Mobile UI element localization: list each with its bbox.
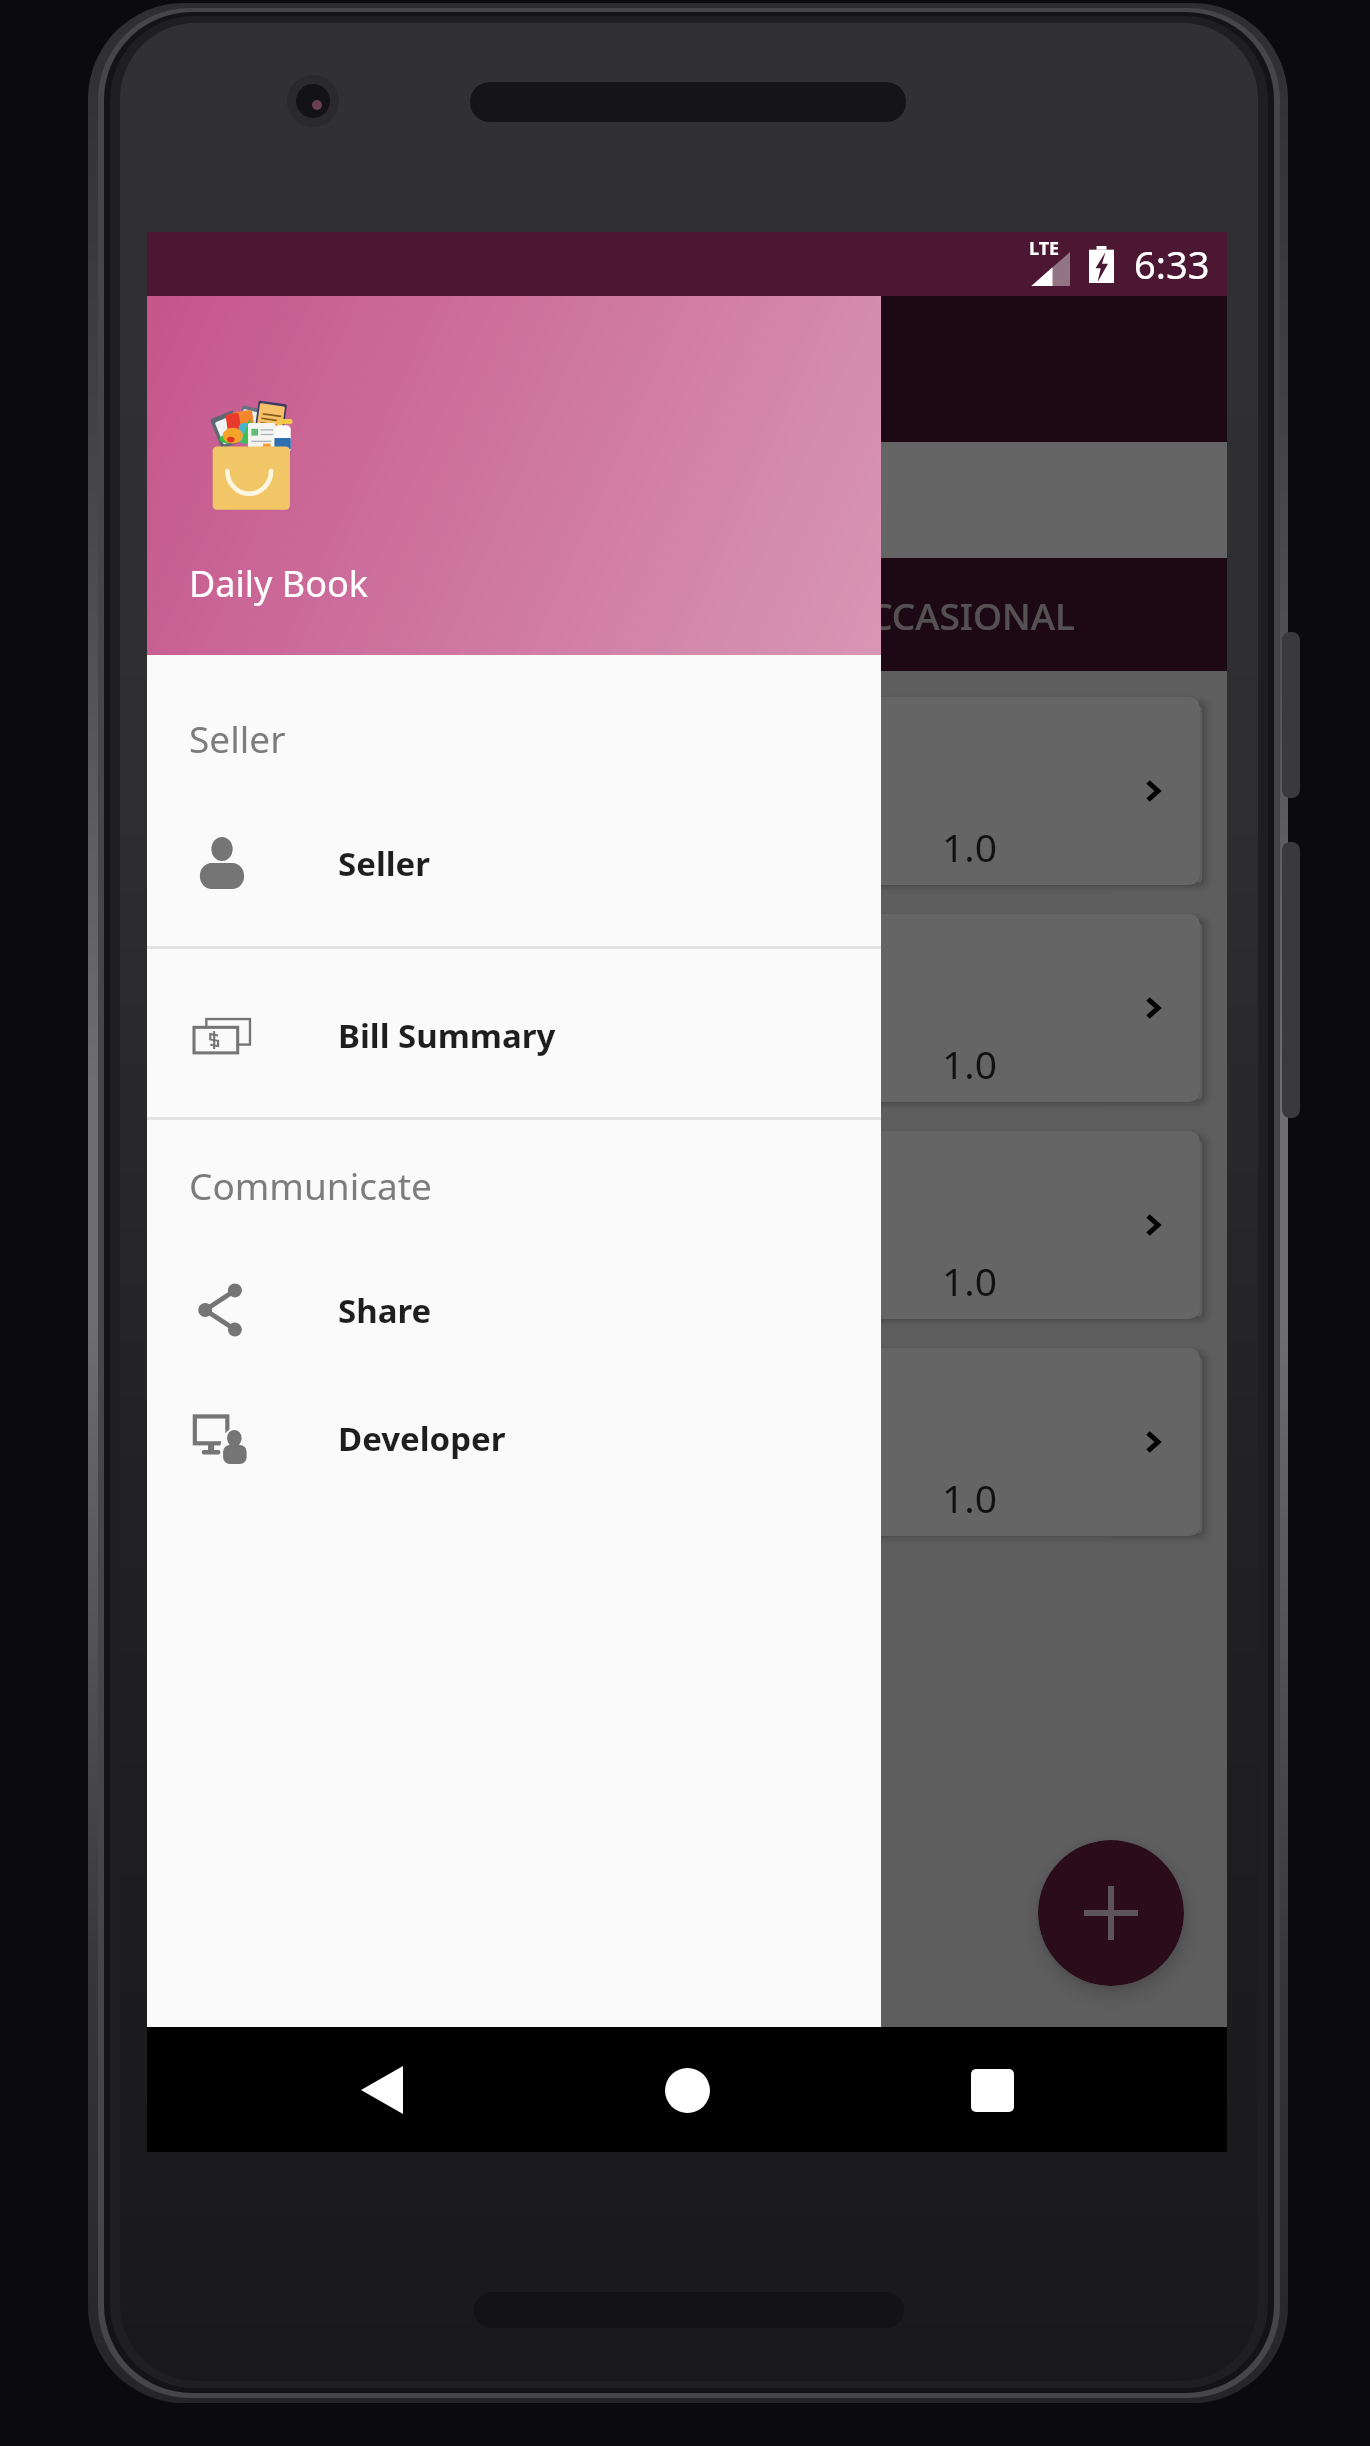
staticText: Bill Summary: [338, 1013, 556, 1058]
staticText: Daily Book: [189, 559, 368, 608]
staticText: Item: [210, 1376, 303, 1433]
staticText: Daily Book: [307, 338, 536, 401]
staticText: 1.0: [942, 1037, 998, 1090]
staticText: 1.0: [942, 1254, 998, 1307]
button[interactable]: Home: [627, 2030, 747, 2150]
staticText: 1.0: [942, 820, 998, 873]
button[interactable]: Item: [174, 1131, 1200, 1319]
staticText: Item: [210, 942, 303, 999]
button[interactable]: Back: [322, 2030, 442, 2150]
staticText: 6:33: [1134, 238, 1210, 290]
staticText: Item: [210, 725, 303, 782]
button[interactable]: Recent apps: [932, 2030, 1052, 2150]
staticText: LTE: [1029, 236, 1060, 261]
button[interactable]: Item: [174, 1348, 1200, 1536]
staticText: Share: [338, 1288, 432, 1333]
button[interactable]: Item: [174, 697, 1200, 885]
button[interactable]: Share: [147, 1228, 881, 1392]
staticText: Item: [210, 1159, 303, 1216]
staticText: 1.0: [942, 1471, 998, 1524]
button[interactable]: Developer: [147, 1356, 881, 1520]
button[interactable]: Item: [174, 914, 1200, 1102]
staticText: Communicate: [189, 1160, 432, 1210]
button[interactable]: Bill Summary: [147, 953, 881, 1117]
staticText: Seller: [338, 841, 431, 886]
staticText: Developer: [338, 1416, 506, 1461]
button[interactable]: OCCASIONAL: [687, 558, 1227, 671]
staticText: DAILY: [364, 589, 471, 641]
staticText: Total : 0.0: [187, 473, 366, 527]
button[interactable]: Open navigation drawer: [171, 321, 267, 417]
staticText: Seller: [189, 713, 286, 763]
button[interactable]: DAILY: [147, 558, 687, 671]
button[interactable]: Seller: [147, 781, 881, 945]
button[interactable]: Add item: [1038, 1840, 1184, 1986]
staticText: OCCASIONAL: [840, 590, 1075, 640]
